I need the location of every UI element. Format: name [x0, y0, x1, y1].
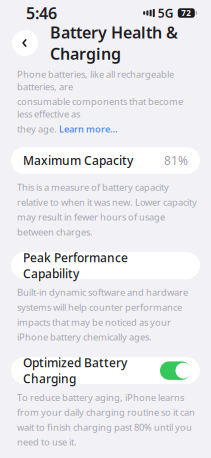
staticText: To reduce battery aging, iPhone learns f… [17, 391, 195, 448]
staticText: 5G [158, 5, 174, 21]
staticText: 81% [164, 152, 188, 168]
staticText: they age. [17, 123, 59, 135]
button[interactable]: Peak Performance Capability [11, 252, 200, 279]
staticText: Learn more… [59, 123, 118, 135]
staticText: Battery Health & Charging [50, 22, 178, 64]
staticText: This is a measure of battery capacity re… [17, 181, 197, 238]
staticText: Maximum Capacity [23, 152, 133, 168]
button[interactable]: Learn more… [59, 123, 118, 135]
staticText: Peak Performance Capability [23, 250, 128, 281]
staticText: Built-in dynamic software and hardware s… [17, 286, 188, 343]
staticText: consumable components that become less e… [17, 95, 183, 120]
button[interactable]: Back [10, 28, 40, 58]
staticText: 72 [181, 8, 191, 18]
button[interactable]: Maximum Capacity [11, 147, 200, 174]
staticText: Optimized Battery Charging [23, 355, 127, 387]
button[interactable]: Optimized Battery Charging [11, 357, 200, 384]
staticText: Phone batteries, like all rechargeable b… [17, 68, 174, 93]
staticText: 5:46 [26, 2, 57, 24]
